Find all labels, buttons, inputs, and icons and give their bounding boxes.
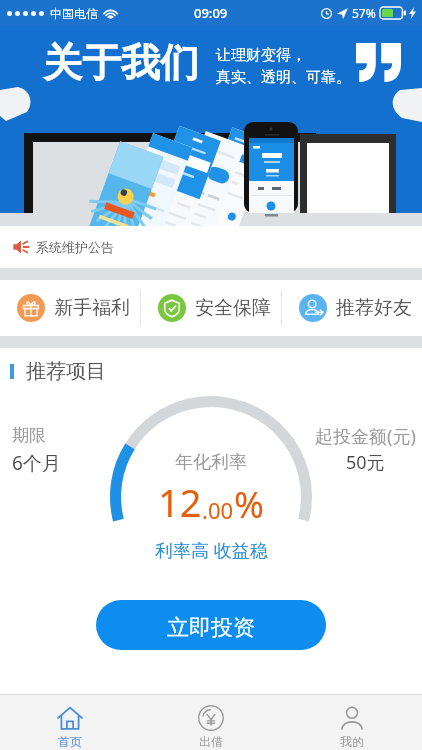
staticText: 09:09 xyxy=(194,4,228,22)
staticText: 推荐项目 xyxy=(26,359,106,384)
staticText: 中国电信 xyxy=(50,6,98,21)
staticText: .00 xyxy=(202,495,234,525)
staticText: 让理财变得， xyxy=(216,46,306,65)
staticText: 真实、透明、可靠。 xyxy=(216,68,351,87)
staticText: 首页 xyxy=(58,734,82,749)
button[interactable]: 立即投资 xyxy=(96,600,326,650)
staticText: % xyxy=(234,480,264,529)
button[interactable]: 系统维护公告 xyxy=(0,226,422,268)
staticText: 出借 xyxy=(199,734,223,749)
staticText: 起投金额(元) xyxy=(315,424,416,449)
button[interactable]: 推荐好友 xyxy=(282,280,422,336)
button[interactable]: 我的 xyxy=(281,695,422,750)
button[interactable]: 新手福利 xyxy=(0,280,140,336)
button[interactable]: 首页 xyxy=(0,695,140,750)
staticText: 我的 xyxy=(340,734,364,749)
staticText: 利率高 收益稳 xyxy=(155,538,268,563)
staticText: 57% xyxy=(352,5,376,21)
button[interactable]: 安全保障 xyxy=(141,280,281,336)
staticText: 年化利率 xyxy=(175,451,247,474)
staticText: 系统维护公告 xyxy=(36,239,114,255)
staticText: 12 xyxy=(158,476,202,528)
staticText: 安全保障 xyxy=(195,296,271,320)
staticText: 立即投资 xyxy=(167,614,255,642)
staticText: 期限 xyxy=(12,425,46,446)
staticText: 50元 xyxy=(346,450,385,475)
staticText: 关于我们 xyxy=(43,38,199,87)
button[interactable]: 出借 xyxy=(140,695,281,750)
staticText: 6个月 xyxy=(12,450,61,476)
staticText: 新手福利 xyxy=(54,296,130,320)
staticText: 推荐好友 xyxy=(336,296,412,320)
